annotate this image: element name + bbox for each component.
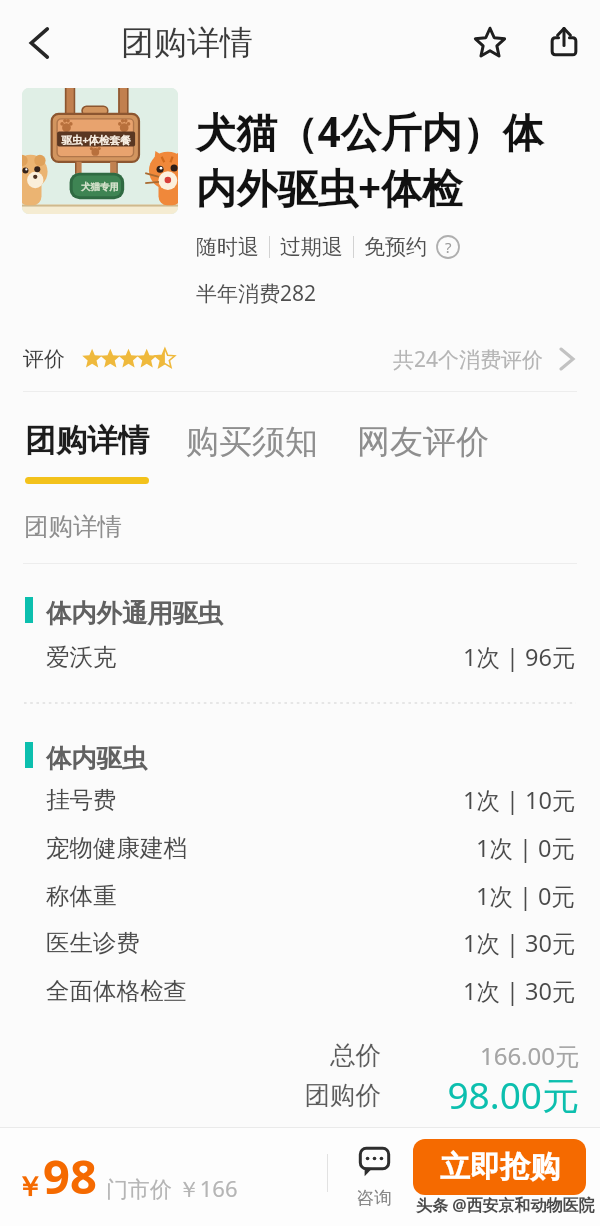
staticText: 门市价 ￥166 bbox=[106, 1173, 238, 1203]
button[interactable]: 咨询 bbox=[345, 1145, 403, 1210]
staticText: 过期退 bbox=[280, 234, 343, 260]
staticText: 团购详情 bbox=[121, 22, 253, 64]
staticText: 共24个消费评价 bbox=[393, 345, 544, 374]
staticText: 98.00元 bbox=[447, 1069, 579, 1115]
button[interactable]: 宠物健康建档 bbox=[0, 826, 600, 870]
staticText: 购买须知 bbox=[186, 421, 318, 463]
button[interactable]: 称体重 bbox=[0, 874, 600, 918]
staticText: 称体重 bbox=[46, 881, 117, 911]
button[interactable]: 评价 bbox=[0, 330, 600, 388]
staticText: 总价 bbox=[330, 1039, 381, 1071]
staticText: 犬猫专用 bbox=[81, 181, 119, 193]
staticText: 咨询 bbox=[356, 1187, 392, 1210]
staticText: 团购价 bbox=[304, 1079, 381, 1111]
button[interactable]: 爱沃克 bbox=[0, 635, 600, 679]
staticText: 立即抢购 bbox=[440, 1148, 560, 1186]
staticText: 1次 | 96元 bbox=[463, 641, 576, 673]
button[interactable]: 团购详情 bbox=[10, 405, 164, 497]
button[interactable]: 立即抢购 bbox=[413, 1139, 586, 1195]
staticText: 宠物健康建档 bbox=[46, 833, 187, 863]
staticText: 全面体格检查 bbox=[46, 976, 187, 1006]
staticText: 团购详情 bbox=[25, 421, 149, 460]
staticText: 1次 | 30元 bbox=[463, 927, 576, 959]
staticText: 驱虫+体检套餐 bbox=[61, 133, 131, 147]
button[interactable]: Favorite bbox=[463, 15, 517, 69]
staticText: ? bbox=[445, 237, 452, 257]
button[interactable]: Share bbox=[537, 14, 591, 68]
staticText: 团购详情 bbox=[24, 511, 122, 542]
staticText: 1次 | 0元 bbox=[476, 832, 576, 864]
staticText: 体内驱虫 bbox=[46, 743, 148, 775]
button[interactable]: 挂号费 bbox=[0, 778, 600, 822]
staticText: 网友评价 bbox=[357, 421, 489, 463]
staticText: 犬猫（4公斤内）体 内外驱虫+体检 bbox=[196, 104, 544, 215]
staticText: 1次 | 30元 bbox=[463, 975, 576, 1007]
button[interactable]: 全面体格检查 bbox=[0, 969, 600, 1013]
staticText: 医生诊费 bbox=[46, 928, 140, 958]
staticText: 免预约 bbox=[364, 234, 427, 260]
staticText: 半年消费282 bbox=[196, 279, 317, 308]
staticText: 随时退 bbox=[196, 234, 259, 260]
staticText: 挂号费 bbox=[46, 785, 117, 815]
button[interactable]: 网友评价 bbox=[346, 405, 500, 497]
staticText: 98 bbox=[43, 1144, 97, 1208]
button[interactable]: Back bbox=[10, 14, 67, 71]
staticText: 体内外通用驱虫 bbox=[46, 598, 224, 630]
button[interactable]: 医生诊费 bbox=[0, 921, 600, 965]
staticText: ￥ bbox=[16, 1170, 43, 1204]
staticText: 爱沃克 bbox=[46, 642, 117, 672]
staticText: 评价 bbox=[23, 346, 65, 372]
staticText: 1次 | 0元 bbox=[476, 880, 576, 912]
staticText: 头条 @西安京和动物医院 bbox=[416, 1194, 595, 1216]
staticText: 166.00元 bbox=[479, 1039, 579, 1072]
staticText: 1次 | 10元 bbox=[463, 784, 576, 816]
button[interactable]: 购买须知 bbox=[175, 405, 329, 497]
